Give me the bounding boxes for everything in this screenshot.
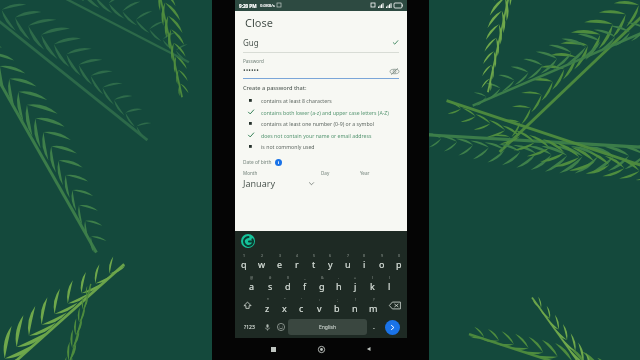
staticText: b <box>334 302 340 314</box>
staticText: Create a password that: <box>243 84 307 92</box>
button[interactable]: 6 <box>322 251 339 272</box>
staticText: 7 <box>347 253 350 258</box>
staticText: w <box>258 258 266 270</box>
staticText: * <box>267 297 269 302</box>
staticText: _ <box>304 275 306 280</box>
staticText: 9:20 PM <box>239 3 257 9</box>
staticText: $ <box>287 275 290 280</box>
staticText: v <box>317 302 322 314</box>
staticText: n <box>352 302 358 314</box>
button[interactable]: English <box>288 319 367 335</box>
button[interactable]: # <box>261 272 279 294</box>
button[interactable]: : <box>310 294 328 316</box>
staticText: January <box>243 177 275 189</box>
staticText: 3 <box>279 253 282 258</box>
staticText: + <box>354 275 357 280</box>
button[interactable]: 5 <box>305 251 322 272</box>
staticText: 2 <box>261 253 264 258</box>
staticText: g <box>319 280 325 292</box>
staticText: f <box>303 280 307 292</box>
staticText: t <box>312 258 316 270</box>
button[interactable]: Emoji <box>274 318 288 336</box>
button[interactable]: ? <box>364 294 382 316</box>
button[interactable]: Shift <box>235 294 259 316</box>
staticText: @ <box>250 275 254 280</box>
button[interactable]: 4 <box>288 251 305 272</box>
staticText: p <box>396 258 402 270</box>
button[interactable]: ' <box>293 294 310 316</box>
button[interactable]: 2 <box>253 251 271 272</box>
button[interactable]: Next <box>385 320 400 335</box>
button[interactable]: + <box>347 272 364 294</box>
staticText: y <box>328 258 333 270</box>
button[interactable]: 0 <box>390 251 407 272</box>
button[interactable]: 8 <box>356 251 373 272</box>
button[interactable]: " <box>276 294 293 316</box>
button[interactable]: * <box>259 294 276 316</box>
staticText: ' <box>301 297 302 302</box>
staticText: ?123 <box>244 324 255 331</box>
staticText: x <box>282 302 287 314</box>
button[interactable]: ; <box>328 294 346 316</box>
button[interactable]: . <box>367 318 381 336</box>
staticText: 6 <box>329 253 332 258</box>
button[interactable]: 7 <box>339 251 356 272</box>
staticText: contains at least one number (0-9) or a … <box>261 120 375 127</box>
button[interactable]: ( <box>364 272 381 294</box>
staticText: l <box>388 280 391 292</box>
button[interactable]: Date of birth info <box>275 159 282 166</box>
button[interactable]: _ <box>296 272 313 294</box>
staticText: is not commonly used <box>261 143 315 150</box>
staticText: i <box>278 160 280 165</box>
staticText: m <box>369 302 378 314</box>
staticText: o <box>379 258 385 270</box>
staticText: Password <box>243 58 264 64</box>
button[interactable]: Back <box>359 339 379 359</box>
staticText: does not contain your name or email addr… <box>261 132 372 139</box>
staticText: ? <box>373 297 375 302</box>
button[interactable]: ! <box>346 294 364 316</box>
staticText: " <box>284 297 286 302</box>
staticText: . <box>373 322 375 332</box>
button[interactable]: Close <box>235 11 407 33</box>
button[interactable]: Voice input <box>260 318 274 336</box>
staticText: ( <box>372 275 374 280</box>
staticText: Gug <box>243 37 259 48</box>
button[interactable]: 1 <box>235 251 253 272</box>
button[interactable]: Backspace <box>382 294 407 316</box>
staticText: Month <box>243 170 321 176</box>
staticText: Year <box>360 170 399 176</box>
staticText: # <box>269 275 272 280</box>
staticText: u <box>345 258 351 270</box>
button[interactable]: & <box>313 272 330 294</box>
staticText: h <box>336 280 342 292</box>
staticText: ! <box>355 297 356 302</box>
staticText: Date of birth <box>243 159 272 166</box>
button[interactable]: Grammarly <box>241 234 255 248</box>
staticText: Day <box>321 170 360 176</box>
button[interactable]: Hide password <box>389 66 399 76</box>
staticText: contains both lower (a-z) and upper case… <box>261 109 389 116</box>
staticText: contains at least 8 characters <box>261 97 332 104</box>
button[interactable]: ) <box>381 272 398 294</box>
staticText: s <box>268 280 273 292</box>
button[interactable]: Recents <box>263 339 283 359</box>
staticText: : <box>319 297 320 302</box>
button[interactable]: Gug <box>243 33 399 52</box>
button[interactable]: Home <box>311 339 331 359</box>
staticText: i <box>363 258 366 270</box>
staticText: a <box>249 280 255 292</box>
button[interactable]: January <box>243 177 315 189</box>
button[interactable]: - <box>330 272 347 294</box>
staticText: c <box>299 302 304 314</box>
staticText: Close <box>245 15 273 30</box>
staticText: 9 <box>381 253 384 258</box>
button[interactable]: Password <box>243 58 399 79</box>
button[interactable]: 3 <box>271 251 288 272</box>
button[interactable]: @ <box>243 272 261 294</box>
staticText: 1 <box>243 253 246 258</box>
button[interactable]: 9 <box>373 251 390 272</box>
staticText: •••••• <box>243 66 259 76</box>
button[interactable]: ?123 <box>238 318 260 336</box>
button[interactable]: $ <box>279 272 296 294</box>
